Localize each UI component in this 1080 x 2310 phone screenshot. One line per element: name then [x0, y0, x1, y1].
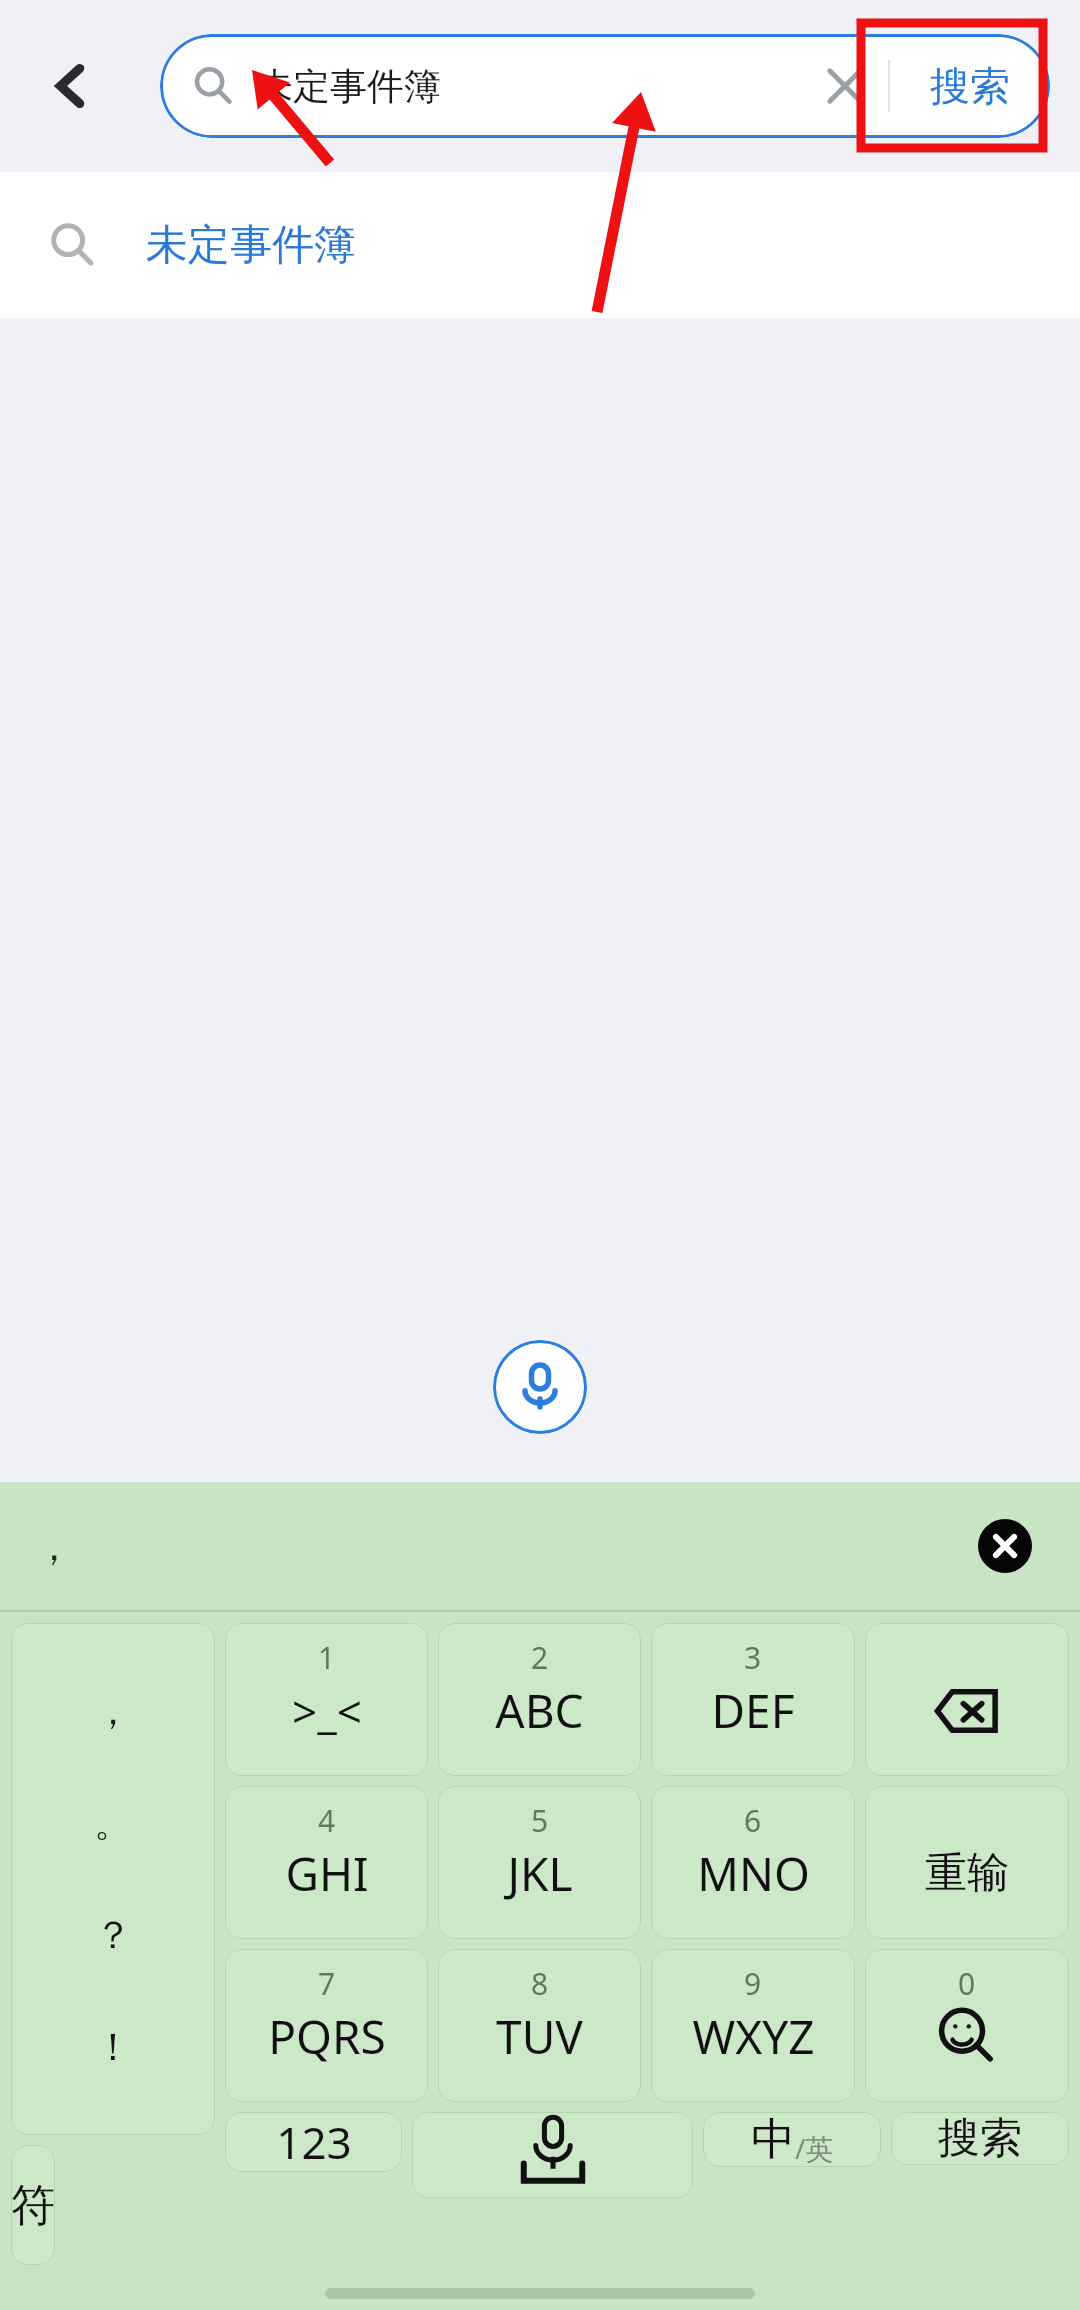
staticText: 。 — [94, 1799, 132, 1847]
staticText: ， — [94, 1687, 132, 1735]
staticText: 未定事件簿 — [256, 63, 802, 110]
staticText: 5 — [531, 1800, 549, 1841]
button[interactable]: Close keyboard — [978, 1519, 1032, 1573]
button[interactable]: Voice input — [493, 1340, 587, 1434]
button[interactable]: 重输 — [865, 1786, 1069, 1939]
staticText: 3 — [744, 1637, 762, 1678]
staticText: 1 — [318, 1637, 336, 1678]
button[interactable]: 中 — [703, 2112, 881, 2167]
staticText: ABC — [495, 1679, 584, 1742]
button[interactable]: Back — [28, 43, 114, 129]
button[interactable]: 4 — [225, 1786, 428, 1939]
button[interactable]: 搜索 — [891, 2112, 1069, 2165]
staticText: MNO — [697, 1842, 810, 1905]
button[interactable]: 搜索 — [890, 34, 1050, 138]
button[interactable]: 3 — [651, 1623, 855, 1776]
button[interactable]: 0 — [865, 1949, 1069, 2102]
staticText: >_< — [292, 1681, 362, 1741]
button[interactable]: ， — [11, 1623, 215, 2135]
staticText: 8 — [531, 1963, 549, 2004]
staticText: 123 — [276, 2112, 352, 2172]
staticText: /英 — [795, 2129, 834, 2167]
staticText: 4 — [318, 1800, 336, 1841]
staticText: 搜索 — [938, 2112, 1022, 2165]
staticText: 中 — [751, 2112, 795, 2167]
staticText: 重输 — [925, 1847, 1009, 1900]
staticText: TUV — [496, 2005, 583, 2068]
button[interactable]: 1 — [225, 1623, 428, 1776]
button[interactable]: 123 — [225, 2112, 402, 2172]
staticText: 6 — [744, 1800, 762, 1841]
staticText: JKL — [507, 1842, 573, 1905]
staticText: ？ — [94, 1911, 132, 1959]
button[interactable] — [412, 2112, 693, 2198]
button[interactable] — [865, 1623, 1069, 1776]
staticText: 0 — [958, 1963, 976, 2004]
staticText: ！ — [94, 2023, 132, 2071]
staticText: 符 — [11, 2178, 55, 2233]
button[interactable]: 2 — [438, 1623, 641, 1776]
staticText: 7 — [318, 1963, 336, 2004]
staticText: 2 — [531, 1637, 549, 1678]
staticText: 搜索 — [930, 61, 1010, 111]
staticText: WXYZ — [692, 2005, 815, 2068]
button[interactable]: 未定事件簿 — [0, 172, 1080, 318]
staticText: 未定事件簿 — [146, 219, 356, 272]
button[interactable]: 6 — [651, 1786, 855, 1939]
button[interactable]: 符 — [11, 2145, 55, 2265]
button[interactable]: 8 — [438, 1949, 641, 2102]
staticText: PQRS — [268, 2005, 386, 2068]
staticText: ， — [34, 1521, 74, 1571]
button[interactable]: 7 — [225, 1949, 428, 2102]
staticText: GHI — [285, 1842, 369, 1905]
staticText: 9 — [744, 1963, 762, 2004]
button[interactable]: 5 — [438, 1786, 641, 1939]
button[interactable]: 9 — [651, 1949, 855, 2102]
button[interactable]: Clear text — [802, 43, 888, 129]
staticText: DEF — [711, 1679, 795, 1742]
